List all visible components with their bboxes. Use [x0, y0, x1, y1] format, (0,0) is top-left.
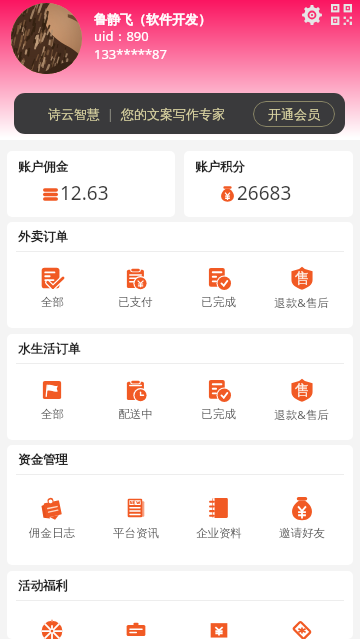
- staticText: 退款&售后: [274, 407, 329, 423]
- button[interactable]: Scan QR code: [331, 4, 352, 25]
- button[interactable]: 已完成: [177, 378, 260, 421]
- button[interactable]: 开通会员: [253, 101, 335, 127]
- button[interactable]: 佣金日志: [10, 495, 94, 540]
- staticText: 佣金日志: [29, 526, 75, 540]
- staticText: 12.63: [60, 180, 109, 206]
- staticText: 已完成: [201, 295, 236, 309]
- button[interactable]: 企业资料: [177, 495, 260, 540]
- staticText: 售: [295, 269, 310, 288]
- staticText: 26683: [237, 180, 292, 206]
- staticText: 平台资讯: [113, 526, 159, 540]
- button[interactable]: 邀请好友: [260, 495, 343, 540]
- button[interactable]: Settings: [302, 5, 322, 25]
- staticText: 水生活订单: [18, 341, 81, 357]
- staticText: 邀请好友: [279, 526, 325, 540]
- staticText: 账户佣金: [18, 159, 68, 175]
- staticText: 133*****87: [94, 45, 167, 63]
- button[interactable]: Profile photo: [11, 3, 82, 74]
- staticText: |: [100, 105, 121, 123]
- button[interactable]: 账户佣金: [7, 151, 175, 217]
- button[interactable]: 售: [260, 266, 343, 311]
- staticText: 活动福利: [18, 578, 68, 594]
- button[interactable]: 账户积分: [184, 151, 353, 217]
- button[interactable]: 诗云智慧: [14, 93, 345, 134]
- staticText: 退款&售后: [274, 295, 329, 311]
- button[interactable]: 幸运抽奖: [10, 621, 94, 639]
- staticText: 鲁静飞（软件开发）: [94, 11, 211, 27]
- button[interactable]: 已完成: [177, 266, 260, 309]
- button[interactable]: 折扣: [260, 621, 343, 639]
- button[interactable]: 配送中: [94, 378, 177, 421]
- button[interactable]: 全部: [10, 266, 94, 309]
- staticText: 售: [295, 381, 310, 400]
- staticText: 已支付: [118, 295, 153, 309]
- staticText: 诗云智慧: [48, 106, 100, 122]
- button[interactable]: 售: [260, 378, 343, 423]
- staticText: 账户积分: [195, 159, 245, 175]
- staticText: 资金管理: [18, 452, 68, 468]
- button[interactable]: 优惠券: [94, 621, 177, 639]
- staticText: 配送中: [118, 407, 153, 421]
- button[interactable]: 已支付: [94, 266, 177, 309]
- staticText: 开通会员: [268, 106, 320, 122]
- button[interactable]: 红包: [177, 621, 260, 639]
- staticText: 企业资料: [196, 526, 242, 540]
- button[interactable]: 平台资讯: [94, 495, 177, 540]
- staticText: uid：890: [94, 27, 149, 45]
- staticText: 外卖订单: [18, 229, 68, 245]
- staticText: 全部: [41, 295, 64, 309]
- button[interactable]: 全部: [10, 378, 94, 421]
- staticText: 全部: [41, 407, 64, 421]
- staticText: 您的文案写作专家: [121, 106, 225, 122]
- staticText: 已完成: [201, 407, 236, 421]
